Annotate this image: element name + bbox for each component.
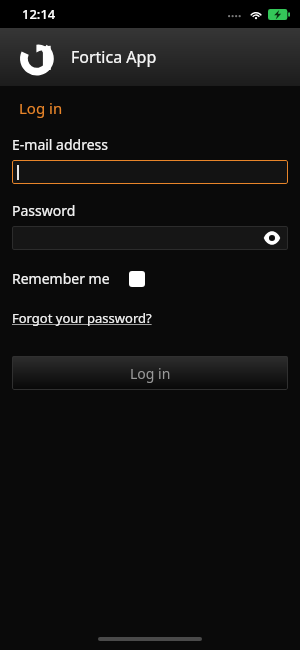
- button[interactable]: Remember me: [12, 269, 145, 288]
- button[interactable]: Show password: [12, 226, 288, 250]
- staticText: Fortica App: [71, 46, 157, 68]
- button[interactable]: Forgot your password?: [12, 309, 152, 327]
- staticText: 12:14: [22, 5, 56, 23]
- button[interactable]: Log in: [12, 356, 288, 390]
- staticText: E-mail address: [12, 135, 108, 154]
- button[interactable]: [12, 160, 288, 184]
- button[interactable]: Show password: [263, 229, 281, 247]
- staticText: Password: [12, 201, 76, 220]
- staticText: Log in: [19, 98, 63, 118]
- staticText: Log in: [130, 364, 171, 383]
- staticText: Remember me: [12, 269, 110, 288]
